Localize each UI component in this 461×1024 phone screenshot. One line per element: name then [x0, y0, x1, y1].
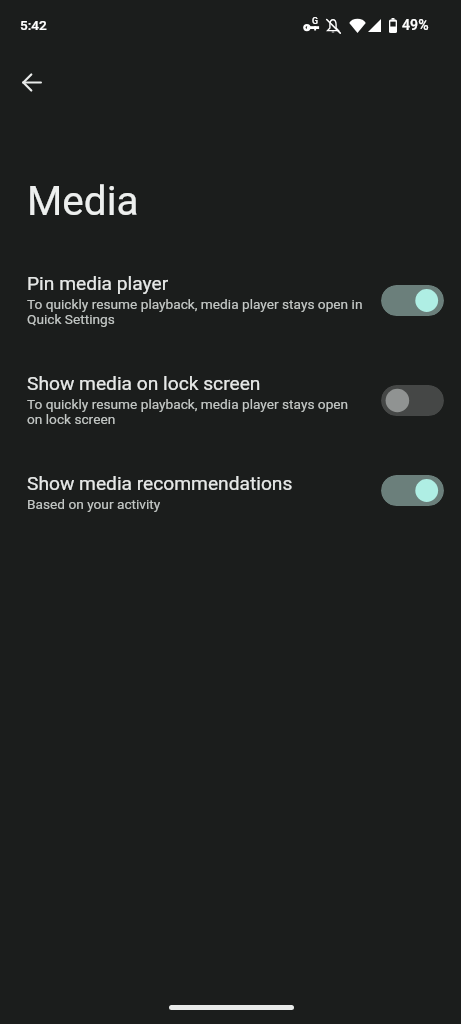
button[interactable]: Back	[10, 60, 54, 104]
staticText: Based on your activity	[27, 497, 161, 512]
button[interactable]: Off	[381, 385, 444, 416]
staticText: To quickly resume playback, media player…	[27, 397, 365, 427]
staticText: Show media on lock screen	[27, 365, 261, 397]
button[interactable]: On	[381, 475, 444, 506]
staticText: Show media recommendations	[27, 465, 293, 497]
staticText: 49%	[402, 17, 429, 33]
button[interactable]: On	[381, 285, 444, 316]
staticText: Media	[27, 177, 139, 225]
staticText: Pin media player	[27, 265, 169, 297]
button[interactable]: Pin media player	[0, 250, 461, 350]
staticText: 5:42	[20, 17, 47, 33]
button[interactable]: Show media recommendations	[0, 450, 461, 530]
button[interactable]: Show media on lock screen	[0, 350, 461, 450]
staticText: G	[312, 16, 318, 26]
staticText: To quickly resume playback, media player…	[27, 297, 365, 327]
